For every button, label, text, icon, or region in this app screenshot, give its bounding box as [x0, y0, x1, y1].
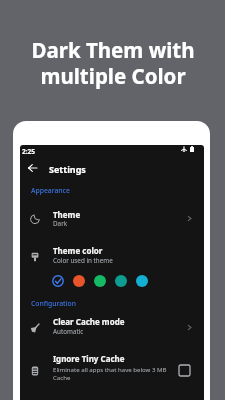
staticText: Appearance: [31, 186, 70, 195]
staticText: Dark Them with multiple Color: [31, 36, 195, 90]
button[interactable]: Theme: [20, 203, 204, 233]
button[interactable]: Theme color: [20, 241, 204, 271]
staticText: 2:25: [22, 147, 35, 156]
button[interactable]: Clear Cache mode: [20, 312, 204, 342]
button[interactable]: Back: [25, 161, 39, 175]
button[interactable]: Cyan colour: [136, 275, 148, 287]
staticText: Settings: [49, 163, 86, 175]
staticText: Clear Cache mode: [53, 316, 125, 327]
button[interactable]: Ignore Tiny Cache toggle: [179, 365, 190, 376]
button[interactable]: Teal colour: [115, 275, 127, 287]
staticText: Automatic: [53, 327, 84, 336]
button[interactable]: Green colour: [94, 275, 106, 287]
staticText: Ignore Tiny Cache: [53, 353, 125, 364]
staticText: Color used in theme: [53, 256, 113, 265]
staticText: Eliminate all apps that have below 3 MB …: [53, 365, 171, 382]
button[interactable]: Blue colour, selected: [52, 275, 64, 287]
button[interactable]: Ignore Tiny Cache: [20, 347, 204, 392]
staticText: Theme: [53, 209, 81, 220]
staticText: Theme color: [53, 245, 103, 256]
button[interactable]: Orange colour: [73, 275, 85, 287]
staticText: Configuration: [31, 299, 76, 308]
staticText: Dark: [53, 219, 68, 228]
